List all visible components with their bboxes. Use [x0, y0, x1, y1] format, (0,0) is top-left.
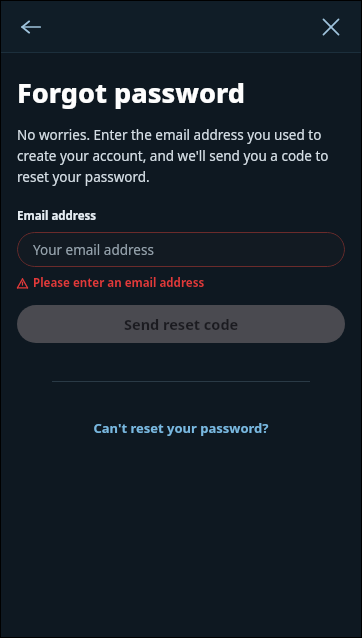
staticText: No worries. Enter the email address you … [17, 126, 345, 186]
staticText: Your email address [33, 241, 154, 259]
staticText: Please enter an email address [33, 275, 205, 291]
button[interactable]: Can't reset your password? [87, 416, 275, 440]
button[interactable]: Close [309, 5, 353, 49]
staticText: Email address [17, 208, 97, 224]
button[interactable]: Send reset code [17, 305, 345, 343]
staticText: Send reset code [124, 314, 239, 334]
button[interactable]: Back [9, 5, 53, 49]
staticText: Forgot password [17, 74, 245, 111]
button[interactable]: Your email address [17, 232, 345, 267]
staticText: Can't reset your password? [93, 419, 269, 437]
